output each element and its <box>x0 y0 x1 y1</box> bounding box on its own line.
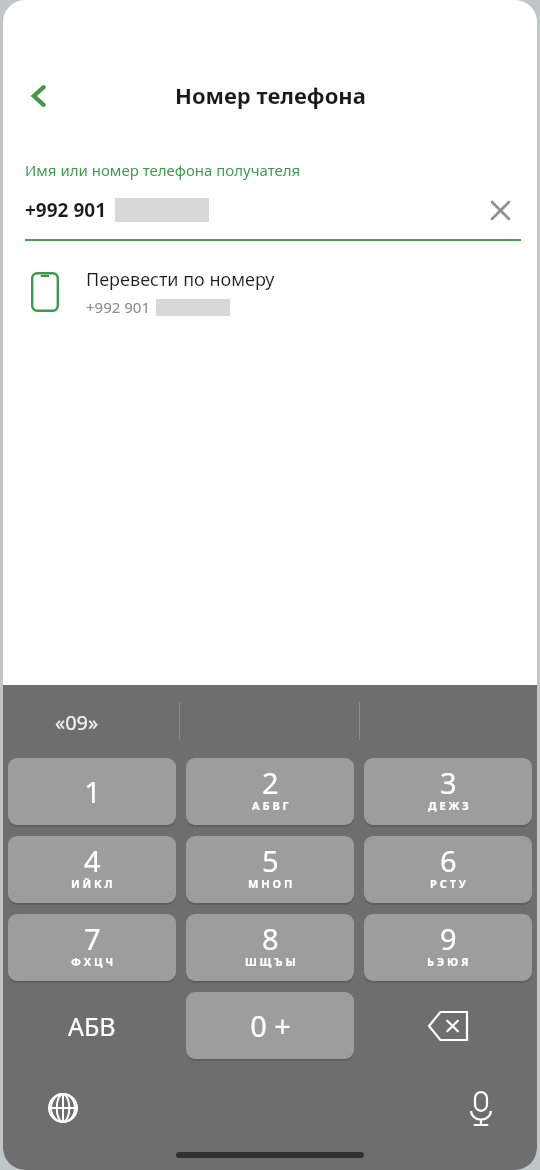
staticText: И Й К Л <box>71 876 113 891</box>
staticText: 1 <box>84 772 101 811</box>
staticText: 9 <box>440 919 457 958</box>
staticText: 6 <box>440 841 457 880</box>
staticText: А Б В Г <box>252 798 289 813</box>
button[interactable]: 5 <box>186 836 354 903</box>
staticText: 8 <box>262 919 279 958</box>
button[interactable]: АБВ <box>8 992 176 1059</box>
button[interactable]: 0 + <box>186 992 354 1059</box>
button[interactable]: 9 <box>364 914 532 981</box>
button[interactable]: 4 <box>8 836 176 903</box>
staticText: +992 901 <box>86 297 150 317</box>
staticText: 4 <box>84 841 101 880</box>
button[interactable]: Change keyboard language <box>36 1081 90 1135</box>
staticText: Р С Т У <box>430 876 466 891</box>
button[interactable]: Clear <box>483 193 517 227</box>
staticText: 3 <box>440 763 457 802</box>
button[interactable]: 8 <box>186 914 354 981</box>
staticText: Номер телефона <box>175 80 366 110</box>
button[interactable]: Voice input <box>454 1081 508 1135</box>
staticText: М Н О П <box>248 876 293 891</box>
staticText: 7 <box>84 919 101 958</box>
staticText: 0 + <box>250 1006 291 1045</box>
button[interactable]: Перевести по номеру <box>3 256 537 328</box>
staticText: Перевести по номеру <box>86 267 275 292</box>
staticText: АБВ <box>68 1009 116 1043</box>
button[interactable]: 2 <box>186 758 354 825</box>
staticText: «09» <box>55 709 99 736</box>
staticText: Имя или номер телефона получателя <box>25 160 301 180</box>
button[interactable]: Backspace <box>364 992 532 1059</box>
staticText: 5 <box>262 841 279 880</box>
staticText: 2 <box>262 763 279 802</box>
button[interactable]: 7 <box>8 914 176 981</box>
staticText: +992 901 <box>25 197 107 223</box>
button[interactable]: 6 <box>364 836 532 903</box>
button[interactable]: 1 <box>8 758 176 825</box>
button[interactable]: Back <box>15 72 63 120</box>
staticText: Ь Э Ю Я <box>427 954 469 969</box>
staticText: Ф Х Ц Ч <box>71 954 114 969</box>
staticText: Д Е Ж З <box>428 798 469 813</box>
button[interactable]: 3 <box>364 758 532 825</box>
staticText: Ш Щ Ъ Ы <box>245 954 296 969</box>
